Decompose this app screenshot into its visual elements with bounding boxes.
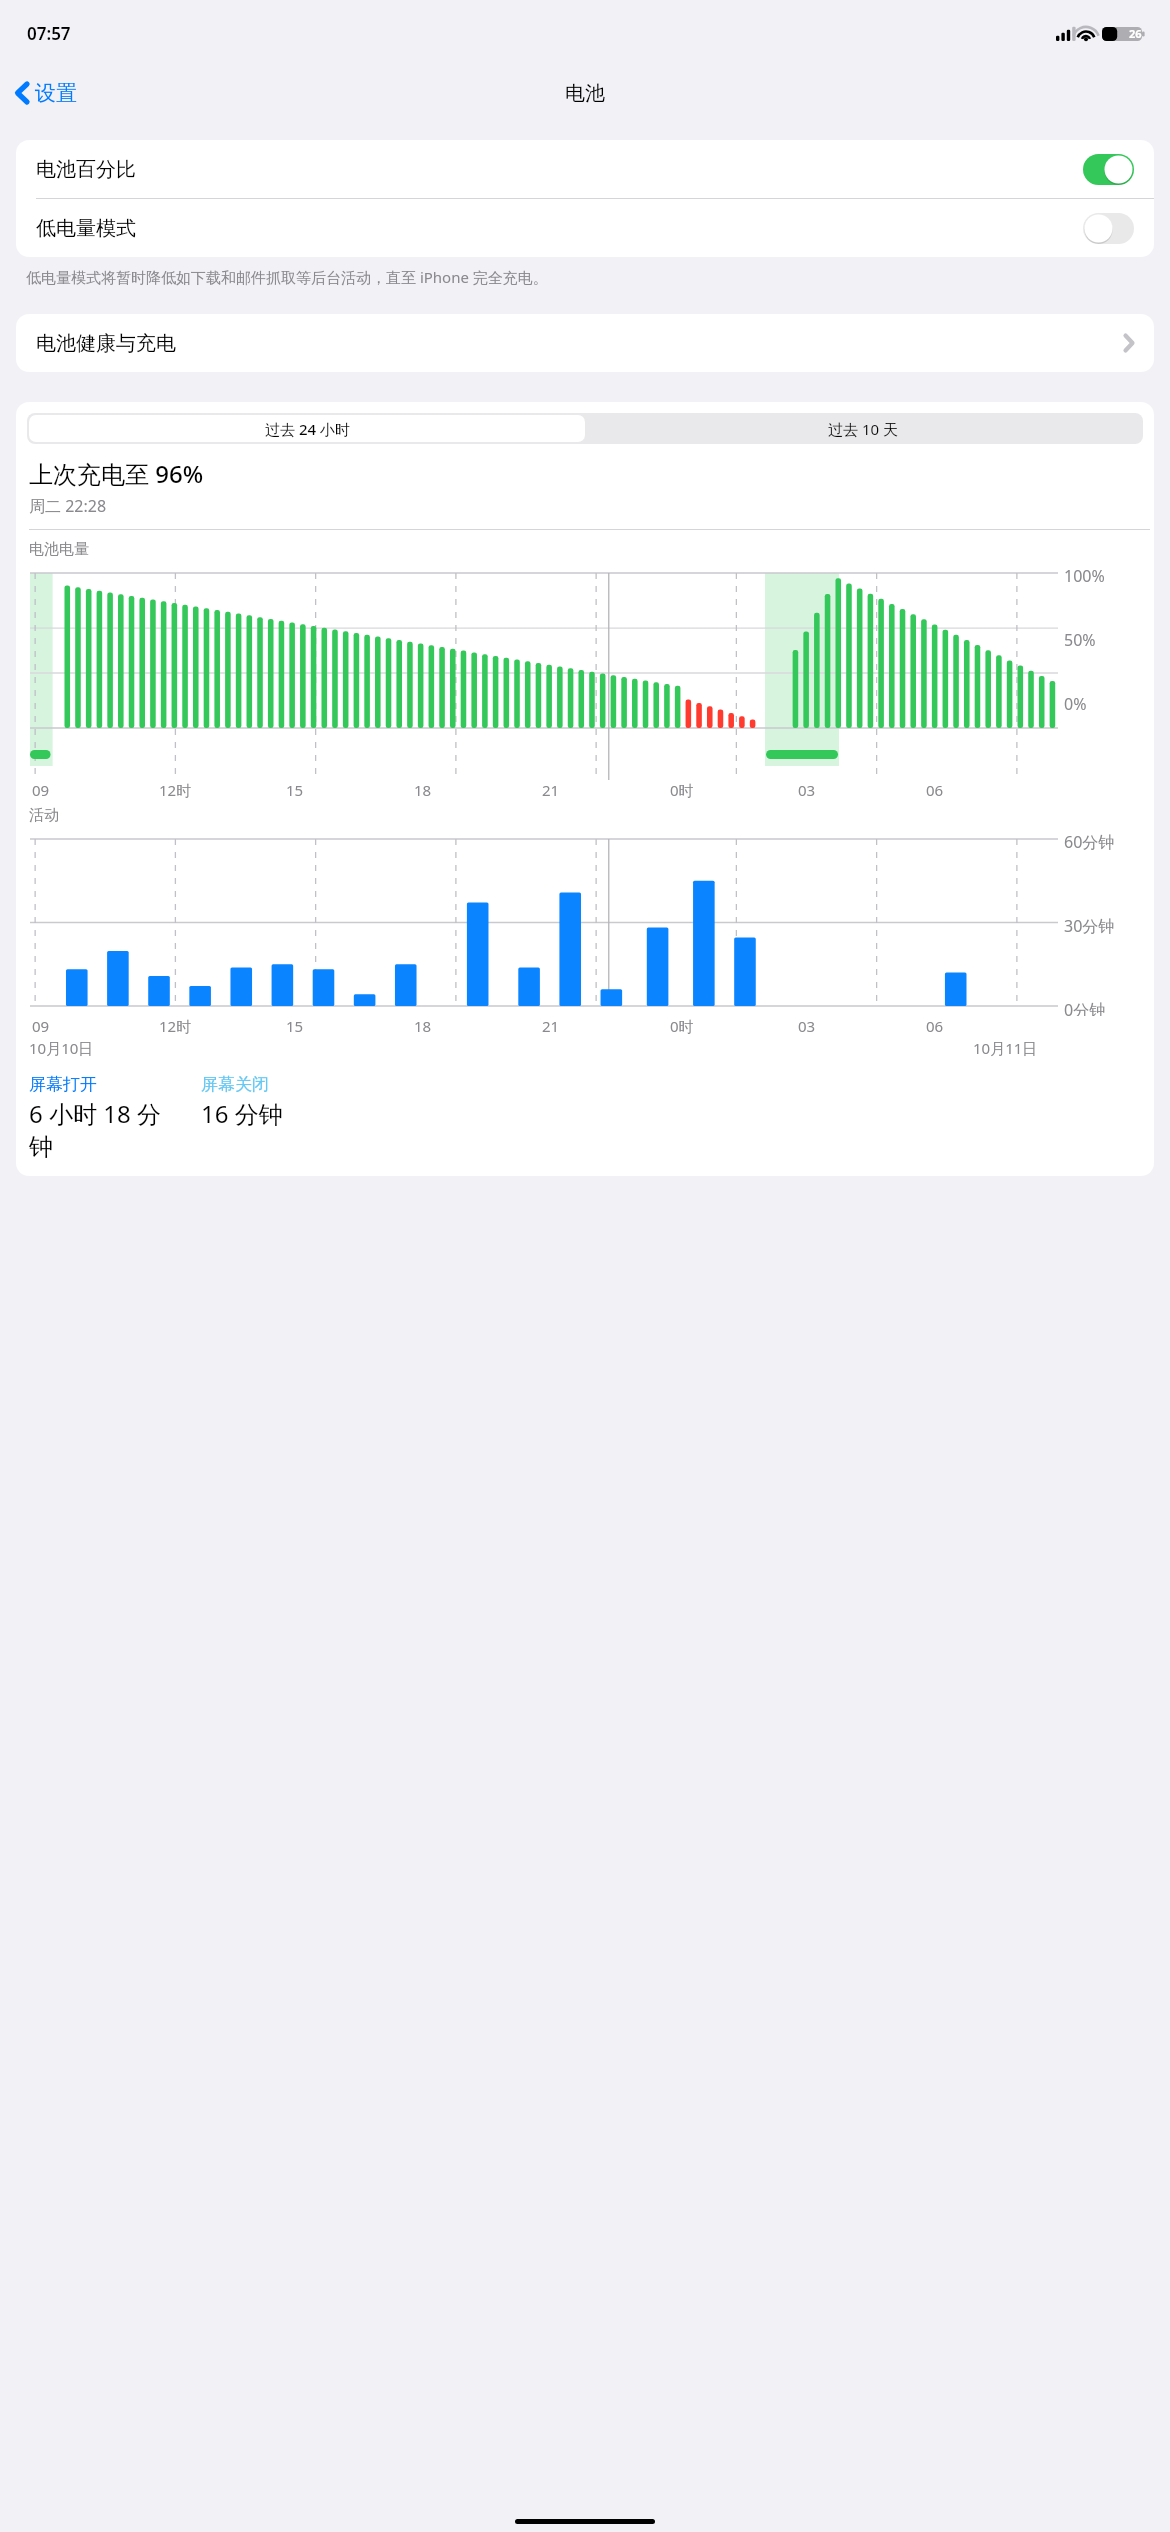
staticText: 26 [1129,26,1142,41]
staticText: 15 [286,1016,414,1036]
staticText: 12时 [159,780,286,800]
staticText: 活动 [29,806,59,825]
staticText: 0分钟 [1064,999,1106,1016]
staticText: 16 分钟 [201,1097,283,1130]
staticText: 06 [926,780,1054,800]
staticText: 03 [798,1016,926,1036]
staticText: 07:57 [27,22,71,45]
staticText: 低电量模式 [36,216,1083,241]
button[interactable]: 低电量模式 [16,199,1154,257]
staticText: 0时 [670,1016,798,1036]
staticText: 15 [286,780,414,800]
staticText: 10月11日 [973,1038,1038,1058]
staticText: 设置 [35,80,77,106]
staticText: 18 [414,1016,542,1036]
staticText: 30分钟 [1064,915,1115,937]
staticText: 0% [1064,693,1087,715]
staticText: 过去 10 天 [828,419,898,439]
button[interactable] [1083,213,1134,244]
staticText: 电池电量 [29,540,89,559]
staticText: 电池健康与充电 [36,331,1124,356]
staticText: 50% [1064,629,1096,651]
button[interactable]: Back [8,74,85,112]
staticText: 18 [414,780,542,800]
staticText: 09 [32,780,159,800]
staticText: 过去 24 小时 [265,419,350,439]
staticText: 06 [926,1016,1054,1036]
staticText: 屏幕关闭 [201,1074,269,1095]
staticText: 低电量模式将暂时降低如下载和邮件抓取等后台活动，直至 iPhone 完全充电。 [26,267,548,287]
staticText: 21 [542,1016,670,1036]
button[interactable]: 电池百分比 [16,140,1154,198]
button[interactable]: 过去 10 天 [585,415,1141,442]
staticText: 电池 [565,81,605,106]
staticText: 0时 [670,780,798,800]
staticText: 03 [798,780,926,800]
staticText: 100% [1064,565,1105,587]
staticText: 12时 [159,1016,286,1036]
staticText: 上次充电至 96% [29,457,204,490]
button[interactable] [1083,154,1134,185]
staticText: 10月10日 [29,1038,94,1058]
staticText: 6 小时 18 分钟 [29,1097,181,1162]
staticText: 周二 22:28 [29,495,107,517]
staticText: 屏幕打开 [29,1074,97,1095]
staticText: 09 [32,1016,159,1036]
other: Back [16,82,29,104]
staticText: 21 [542,780,670,800]
staticText: 电池百分比 [36,157,1083,182]
button[interactable]: 电池健康与充电 [16,314,1154,372]
staticText: 60分钟 [1064,831,1115,853]
button[interactable]: 过去 24 小时 [29,415,585,442]
